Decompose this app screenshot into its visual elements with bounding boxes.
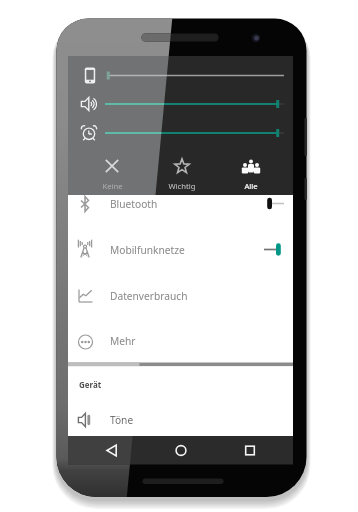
staticText: Töne [110, 413, 134, 427]
staticText: Keine [102, 181, 123, 191]
button[interactable] [68, 192, 293, 216]
staticText: Mobilfunknetze [110, 243, 185, 257]
staticText: Bluetooth [110, 197, 158, 211]
staticText: Datenverbrauch [110, 289, 188, 303]
staticText: Gerät [79, 379, 102, 390]
staticText: Mehr [110, 334, 136, 348]
staticText: Alle [244, 181, 258, 191]
staticText: Wichtig [168, 181, 196, 191]
